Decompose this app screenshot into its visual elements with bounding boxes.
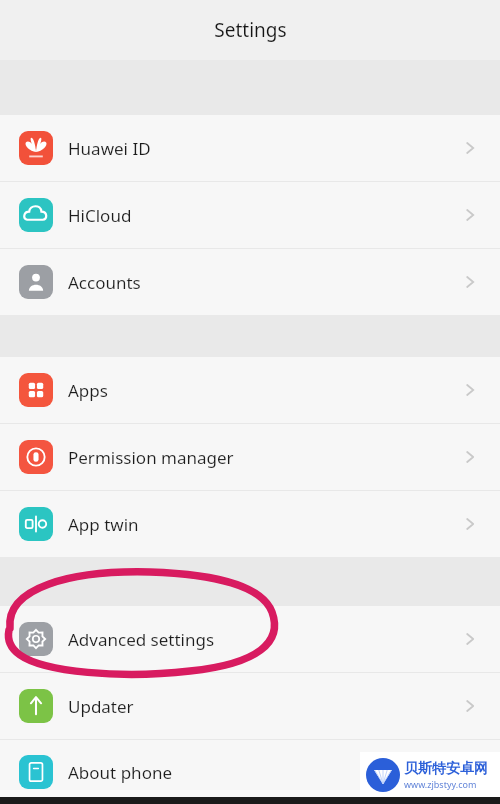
- button[interactable]: Advanced settings: [0, 606, 500, 672]
- staticText: www.zjbstyy.com: [404, 778, 477, 790]
- staticText: About phone: [68, 761, 460, 784]
- button[interactable]: Accounts: [0, 249, 500, 315]
- button[interactable]: Apps: [0, 357, 500, 423]
- staticText: Updater: [68, 695, 460, 718]
- staticText: Advanced settings: [68, 628, 460, 651]
- staticText: Apps: [68, 379, 460, 402]
- staticText: Accounts: [68, 271, 460, 294]
- staticText: Huawei ID: [68, 137, 460, 160]
- staticText: Settings: [214, 17, 287, 43]
- staticText: Permission manager: [68, 446, 460, 469]
- button[interactable]: HiCloud: [0, 182, 500, 248]
- button[interactable]: Updater: [0, 673, 500, 739]
- button[interactable]: Permission manager: [0, 424, 500, 490]
- staticText: HiCloud: [68, 204, 460, 227]
- staticText: 贝斯特安卓网: [404, 760, 488, 778]
- staticText: App twin: [68, 513, 460, 536]
- button[interactable]: App twin: [0, 491, 500, 557]
- button[interactable]: Huawei ID: [0, 115, 500, 181]
- button[interactable]: About phone: [0, 740, 500, 804]
